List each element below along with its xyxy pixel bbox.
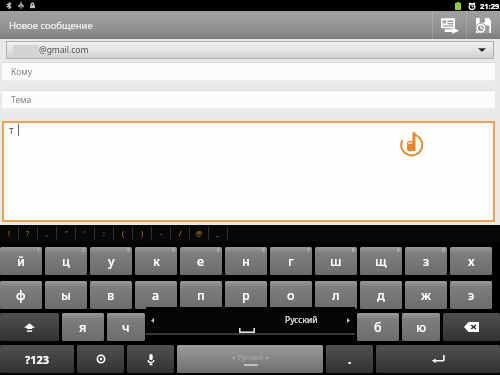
staticText: ж [421, 287, 431, 304]
staticText: ! [8, 229, 10, 239]
button[interactable]: а [135, 281, 177, 309]
button[interactable]: ы [45, 281, 87, 309]
button[interactable]: б [357, 313, 399, 341]
staticText: 2 [82, 247, 85, 253]
staticText: т [9, 123, 14, 137]
staticText: щ [375, 253, 387, 270]
button[interactable]: ? [19, 225, 37, 242]
staticText: в [107, 287, 115, 304]
button[interactable]: ф [0, 281, 42, 309]
button[interactable]: ( [114, 225, 132, 242]
staticText: Новое сообщение [9, 19, 93, 32]
button[interactable]: й [0, 247, 42, 275]
staticText: о [287, 287, 295, 304]
button[interactable]: ! [0, 225, 18, 242]
staticText: 9 [397, 247, 400, 253]
button[interactable]: в [90, 281, 132, 309]
staticText: , [46, 229, 48, 239]
staticText: п [197, 287, 205, 304]
staticText: ц [62, 253, 70, 270]
button[interactable]: о [270, 281, 312, 309]
button[interactable]: Тема [2, 90, 495, 109]
staticText: 0 [442, 247, 445, 253]
staticText: 8 [352, 247, 355, 253]
button[interactable]: к [135, 247, 177, 275]
staticText: д [377, 287, 385, 304]
staticText: к [153, 253, 160, 270]
staticText: 4 [172, 247, 175, 253]
button[interactable]: : [95, 225, 113, 242]
button[interactable]: х [450, 247, 492, 275]
button[interactable]: Кому [2, 62, 495, 81]
staticText: : [103, 229, 105, 239]
button[interactable]: г [270, 247, 312, 275]
staticText: н [242, 253, 250, 270]
button[interactable]: ш [315, 247, 357, 275]
button[interactable]: Shift [0, 313, 59, 341]
staticText: ю [416, 319, 427, 336]
button[interactable]: л [315, 281, 357, 309]
button[interactable]: / [171, 225, 189, 242]
button[interactable]: у [90, 247, 132, 275]
button[interactable]: @ [190, 225, 208, 242]
button[interactable]: ц [45, 247, 87, 275]
button[interactable]: щ [360, 247, 402, 275]
button[interactable]: д [360, 281, 402, 309]
staticText: б [374, 319, 382, 336]
staticText: л [332, 287, 340, 304]
button[interactable]: ч [107, 313, 145, 341]
button[interactable]: - [152, 225, 170, 242]
staticText: й [17, 253, 25, 270]
button[interactable]: э [450, 281, 492, 309]
button[interactable]: , [38, 225, 56, 242]
staticText: 3 [127, 247, 130, 253]
staticText: 5 [217, 247, 220, 253]
button[interactable]: т [2, 121, 495, 222]
staticText: я [79, 319, 87, 336]
staticText: а [152, 287, 160, 304]
staticText: ?123 [25, 352, 50, 367]
staticText: ? [26, 229, 30, 239]
button[interactable]: Space [177, 345, 323, 373]
staticText: - [160, 229, 163, 239]
button[interactable]: Settings [77, 345, 124, 373]
button[interactable]: р [225, 281, 267, 309]
staticText: . [348, 351, 352, 367]
button[interactable]: . [326, 345, 373, 373]
button[interactable]: @gmail.com [6, 41, 494, 59]
button[interactable]: Backspace [443, 313, 500, 341]
staticText: Русский [238, 353, 263, 362]
staticText: г [288, 253, 294, 270]
staticText: з [423, 253, 430, 270]
button[interactable]: Save draft [467, 11, 500, 39]
button[interactable]: я [62, 313, 104, 341]
staticText: е [197, 253, 205, 270]
button[interactable]: ' [76, 225, 94, 242]
staticText: 1 [37, 247, 40, 253]
staticText: ф [16, 287, 26, 304]
staticText: Кому [11, 66, 33, 78]
staticText: р [242, 287, 250, 304]
button[interactable]: е [180, 247, 222, 275]
staticText: _ [216, 229, 220, 239]
staticText: 7 [307, 247, 310, 253]
button[interactable]: " [57, 225, 75, 242]
staticText: Тема [11, 94, 32, 106]
staticText: х [468, 253, 475, 270]
staticText: ч [122, 319, 130, 336]
button[interactable]: _ [209, 225, 227, 242]
staticText: ш [330, 253, 342, 270]
staticText: ' [84, 229, 86, 239]
staticText: Русский [285, 314, 318, 326]
button[interactable]: п [180, 281, 222, 309]
button[interactable]: Send [433, 11, 466, 39]
button[interactable]: з [405, 247, 447, 275]
button[interactable]: Voice input [127, 345, 174, 373]
button[interactable]: н [225, 247, 267, 275]
button[interactable]: ю [402, 313, 440, 341]
button[interactable]: ж [405, 281, 447, 309]
button[interactable]: ?123 [0, 345, 74, 373]
button[interactable]: ) [133, 225, 151, 242]
button[interactable]: Enter [376, 345, 500, 373]
staticText: э [468, 287, 475, 304]
